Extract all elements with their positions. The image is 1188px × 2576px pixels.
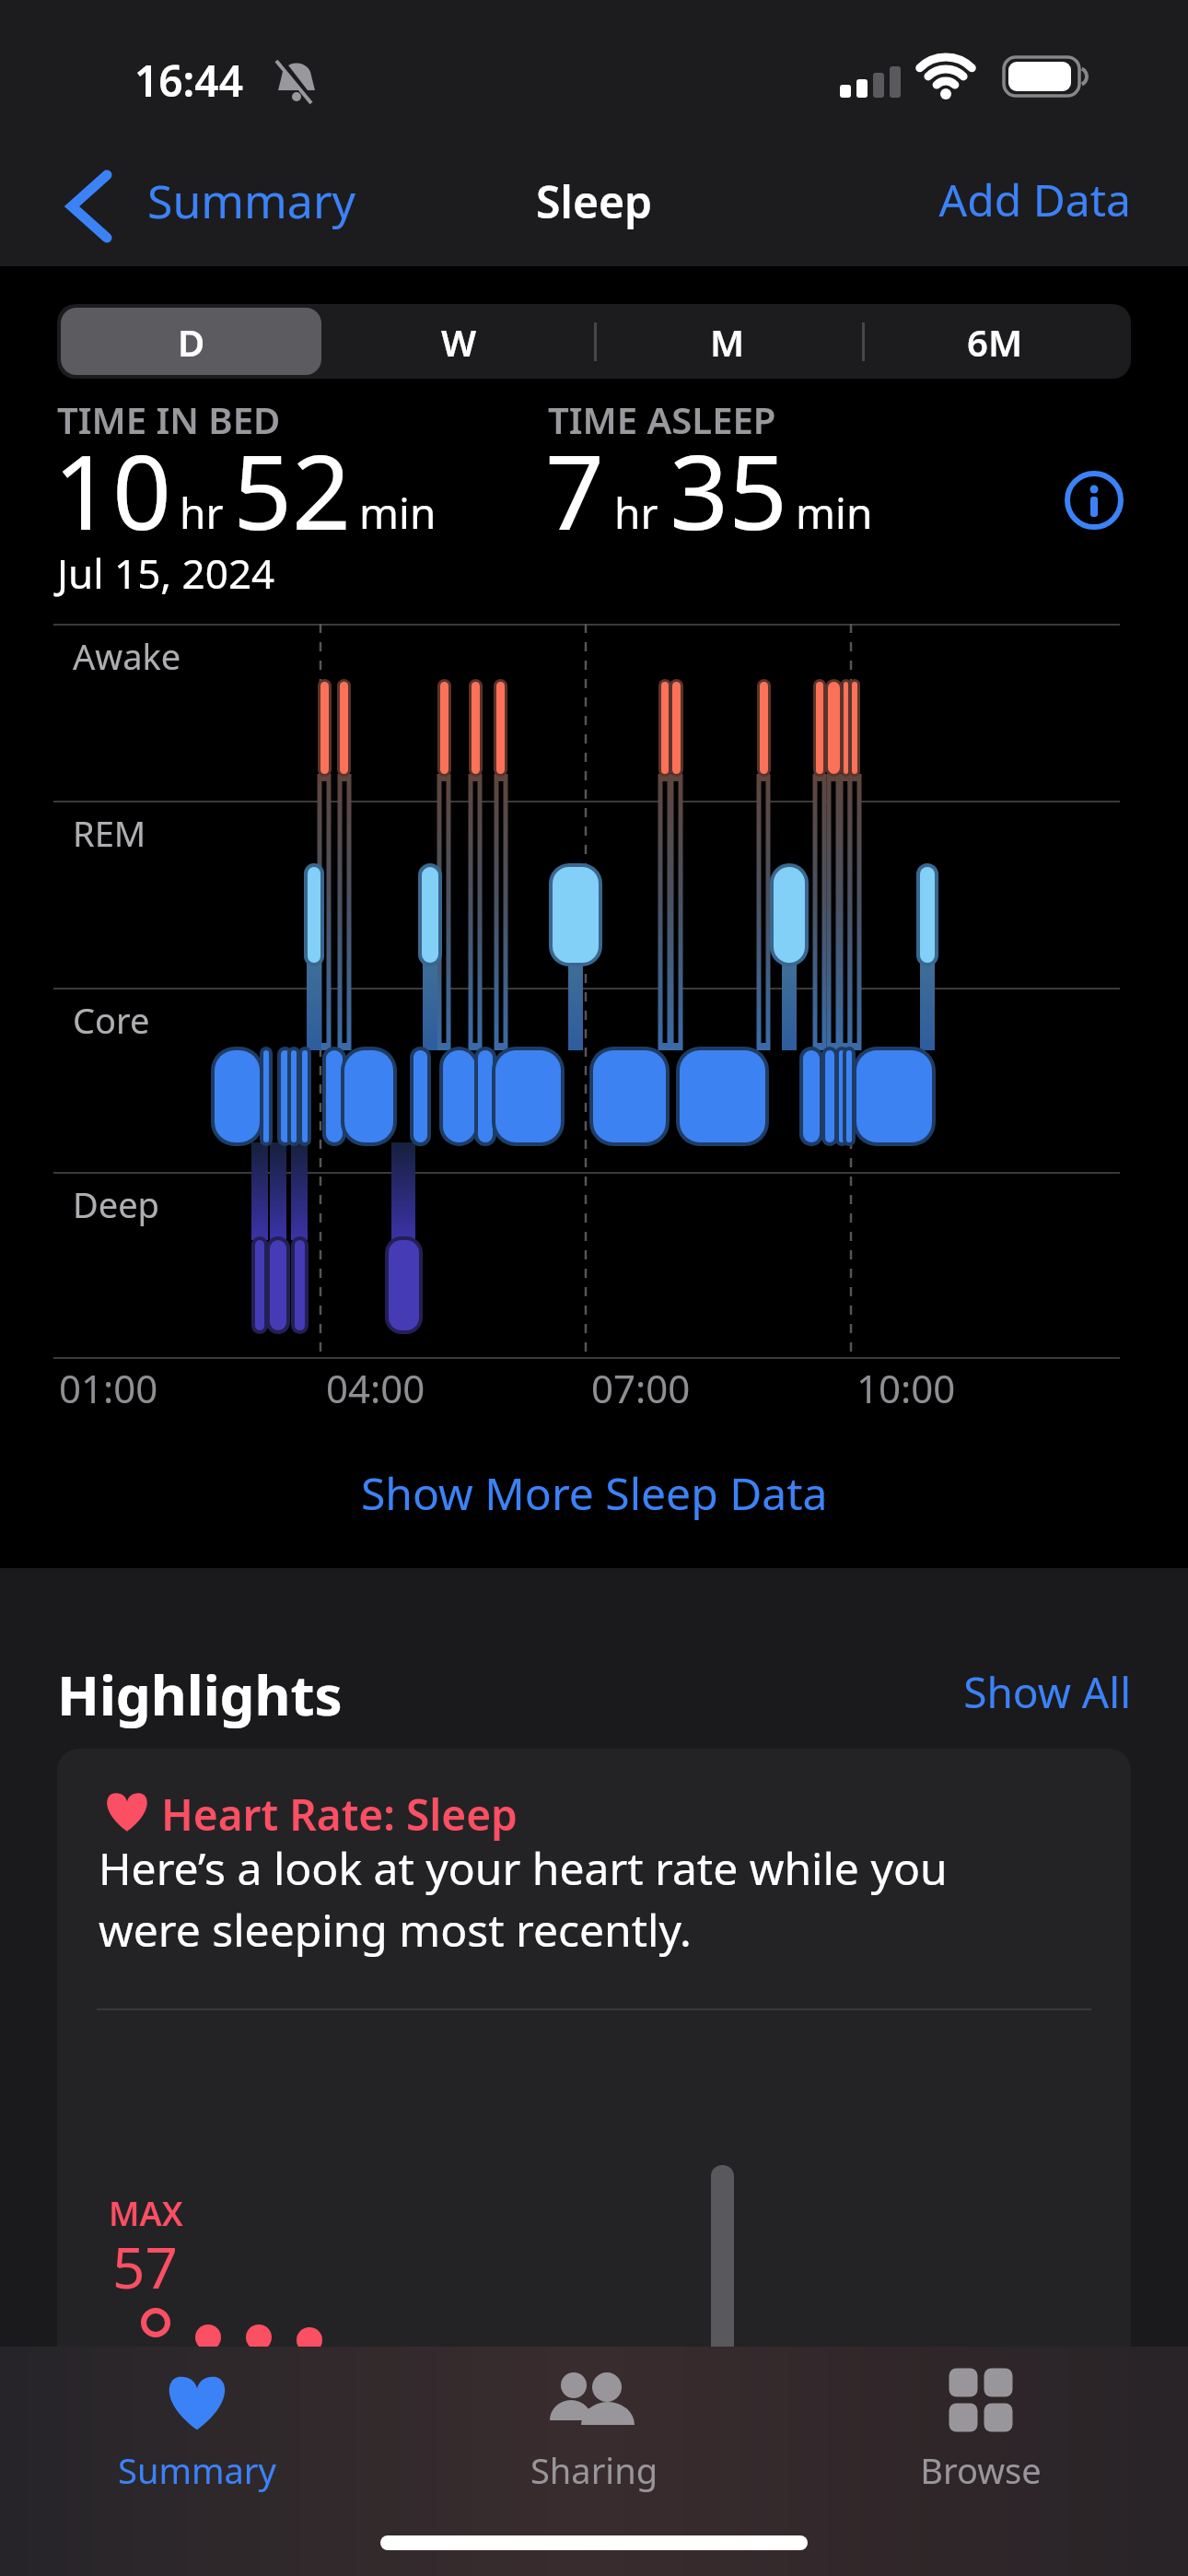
staticText: 10:00 [856, 1362, 956, 1414]
staticText: 16:44 [134, 52, 243, 110]
staticText: min [796, 484, 873, 542]
button[interactable] [61, 308, 321, 375]
button[interactable]: M [593, 308, 861, 375]
staticText: 57 [112, 2228, 178, 2305]
button[interactable]: Browse [889, 2354, 1073, 2492]
staticText: REM [73, 809, 146, 857]
staticText: Deep [73, 1180, 159, 1228]
staticText: M [710, 317, 745, 367]
staticText: Here’s a look at your heart rate while y… [99, 1838, 948, 1960]
staticText: 6M [967, 317, 1023, 367]
staticText: Sharing [502, 2446, 686, 2494]
staticText: 35 [670, 419, 788, 560]
staticText: TIME ASLEEP [548, 394, 776, 444]
staticText: Browse [889, 2446, 1073, 2494]
staticText: Heart Rate: Sleep [161, 1786, 518, 1844]
staticText: Awake [73, 632, 181, 680]
button[interactable]: Show More Sleep Data [341, 1456, 847, 1529]
staticText: Show All [930, 1663, 1131, 1718]
staticText: Jul 15, 2024 [57, 545, 275, 601]
button[interactable]: 6M [861, 308, 1129, 375]
staticText: D [178, 317, 205, 367]
staticText: 04:00 [326, 1362, 425, 1414]
staticText: W [441, 317, 477, 367]
button[interactable]: Show All [930, 1663, 1133, 1718]
staticText: min [359, 484, 437, 542]
button[interactable]: Summary [55, 164, 313, 247]
staticText: hr [614, 484, 658, 542]
staticText: Add Data [930, 170, 1131, 229]
button[interactable]: W [325, 308, 593, 375]
staticText: 01:00 [59, 1362, 158, 1414]
staticText: 52 [233, 419, 352, 560]
staticText: hr [180, 484, 224, 542]
staticText: Show More Sleep Data [361, 1463, 828, 1523]
button[interactable]: Sharing [502, 2354, 686, 2492]
staticText: Sleep [0, 171, 1188, 231]
staticText: 7 [545, 419, 605, 560]
staticText: Summary [105, 2446, 289, 2494]
button[interactable]: Add Data [930, 164, 1151, 247]
staticText: Highlights [57, 1657, 343, 1732]
button[interactable]: Summary [105, 2354, 289, 2492]
button[interactable]: Heart Rate: Sleep [57, 1749, 1131, 2576]
staticText: Summary [147, 170, 356, 232]
staticText: MAX [109, 2191, 183, 2236]
staticText: 07:00 [591, 1362, 691, 1414]
staticText: Core [73, 996, 150, 1044]
staticText: TIME IN BED [57, 394, 281, 444]
button[interactable] [1059, 465, 1129, 535]
button[interactable]: D [57, 308, 325, 375]
staticText: 10 [53, 419, 172, 560]
